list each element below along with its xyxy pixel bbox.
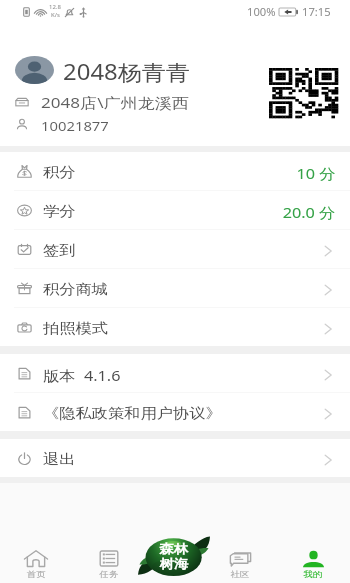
button[interactable]: 积分商城: [0, 269, 350, 307]
staticText: 17:15: [302, 5, 331, 19]
staticText: 100%: [247, 5, 276, 19]
button[interactable]: 森林树海: [138, 532, 210, 577]
other: QR code: [269, 68, 338, 118]
staticText: 20.0 分: [283, 203, 336, 222]
button[interactable]: 首页: [14, 530, 58, 583]
staticText: 首页: [27, 569, 45, 579]
staticText: 《隐私政策和用户协议》: [43, 405, 222, 423]
staticText: 树海: [160, 556, 188, 571]
staticText: 森林: [160, 541, 188, 556]
button[interactable]: 《隐私政策和用户协议》: [0, 393, 350, 431]
button[interactable]: 签到: [0, 230, 350, 268]
staticText: 任务: [100, 569, 118, 579]
staticText: 积分商城: [43, 281, 108, 299]
staticText: 版本 4.1.6: [43, 366, 121, 385]
staticText: 签到: [43, 242, 75, 260]
button[interactable]: 任务: [87, 530, 131, 583]
staticText: 我的: [304, 569, 322, 579]
button[interactable]: 社区: [218, 530, 262, 583]
staticText: 2048杨青青: [63, 58, 191, 87]
staticText: 10 分: [297, 164, 336, 183]
button[interactable]: 我的: [291, 530, 335, 583]
staticText: 拍照模式: [43, 320, 108, 338]
staticText: 退出: [43, 451, 75, 469]
button[interactable]: 学分: [0, 191, 350, 229]
button[interactable]: 积分: [0, 152, 350, 190]
staticText: 学分: [43, 203, 75, 221]
button[interactable]: 拍照模式: [0, 308, 350, 346]
button[interactable]: 版本 4.1.6: [0, 354, 350, 392]
staticText: 10021877: [41, 117, 109, 135]
staticText: 积分: [43, 164, 75, 182]
staticText: 12.8: [49, 3, 61, 11]
button[interactable]: 退出: [0, 439, 350, 477]
staticText: 2048店\广州龙溪西: [41, 93, 190, 112]
staticText: K/s: [51, 11, 60, 19]
staticText: 社区: [231, 569, 249, 579]
